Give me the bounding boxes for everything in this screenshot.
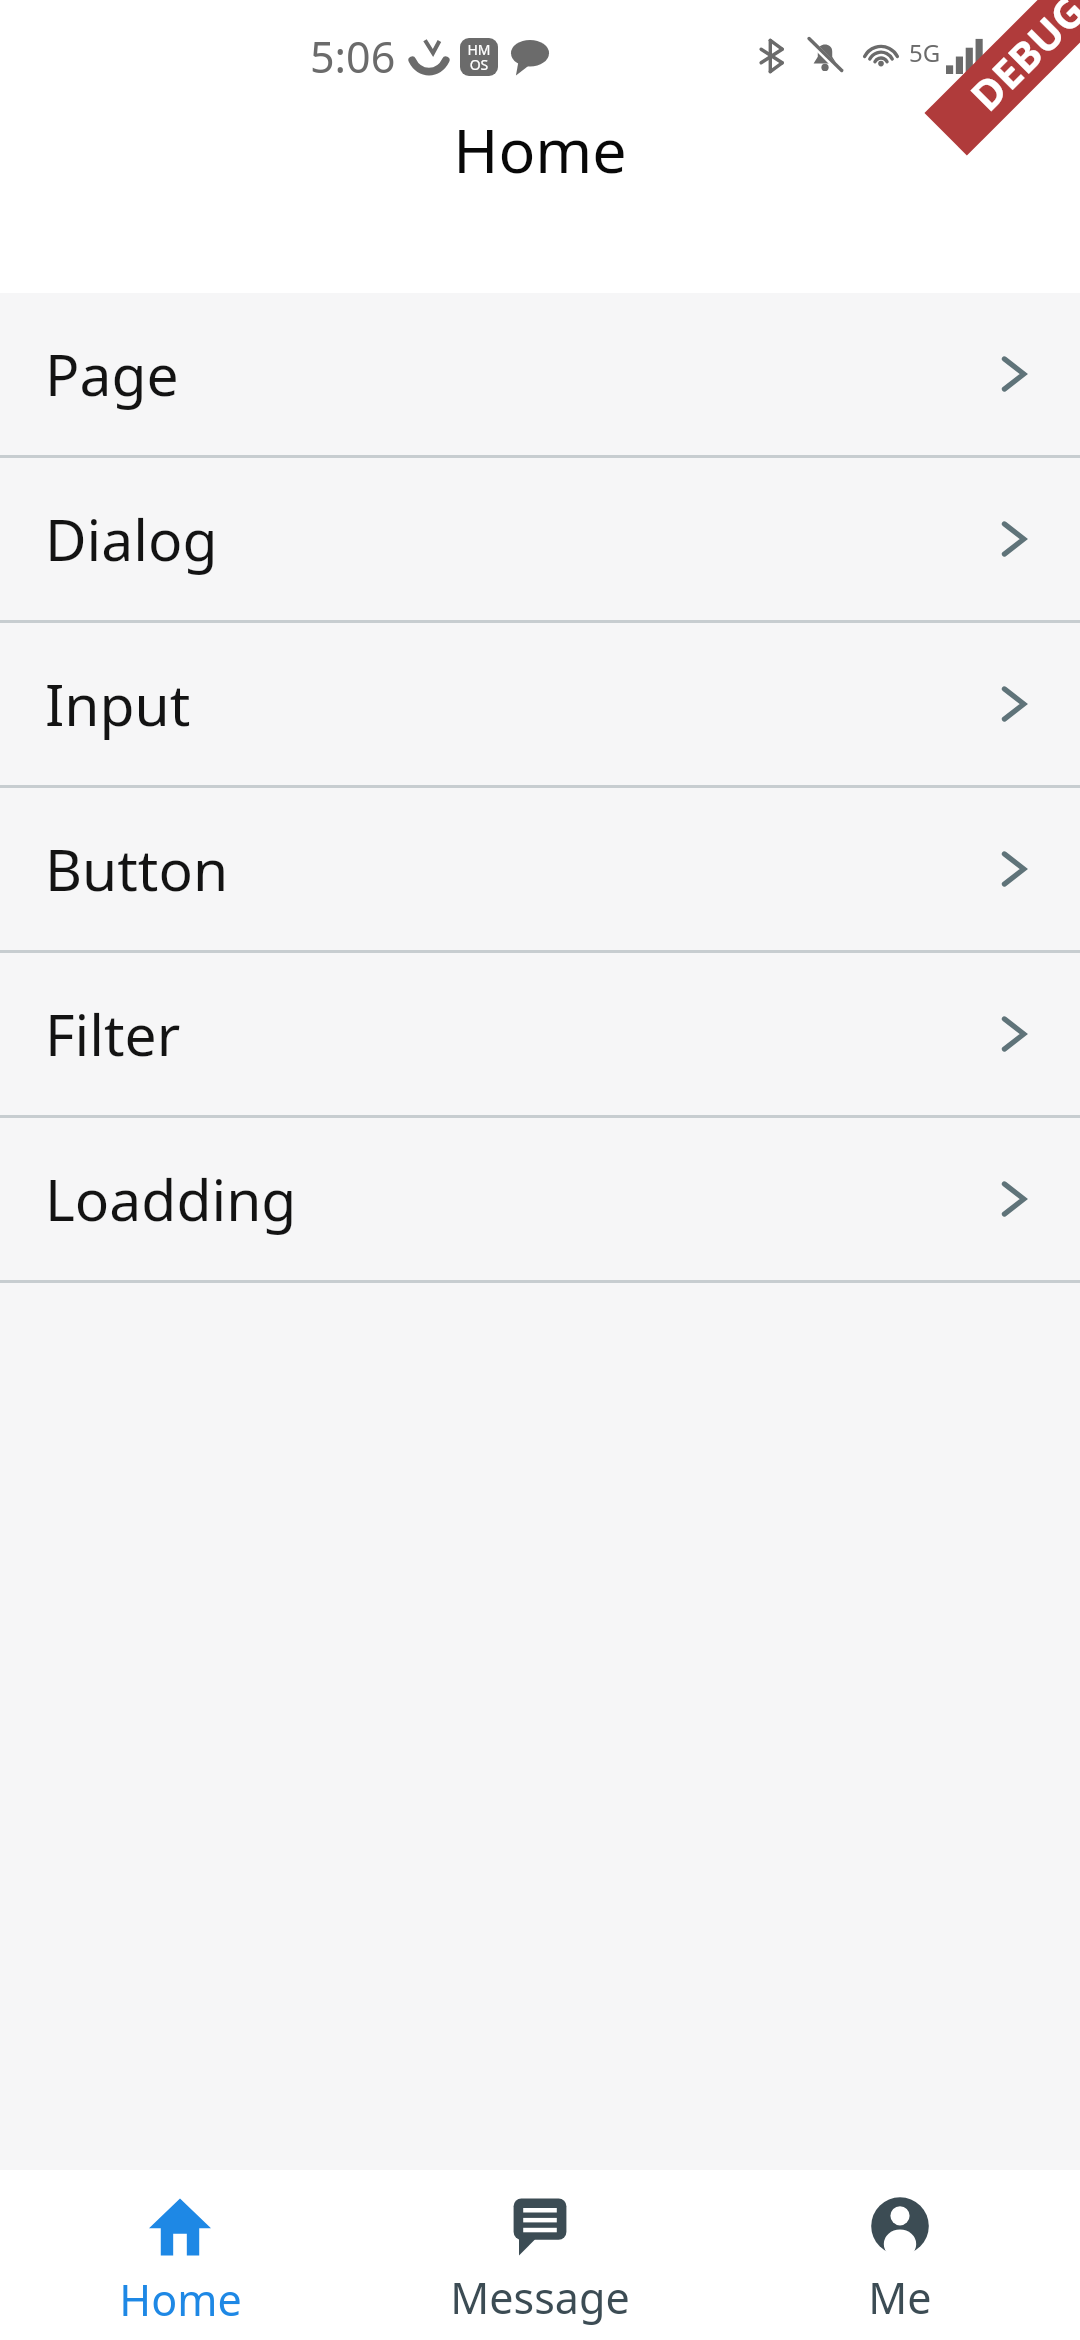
other: Message [510, 2196, 570, 2256]
staticText: Input [45, 665, 191, 743]
button[interactable]: Button [0, 788, 1080, 950]
staticText: Message [450, 2268, 630, 2327]
button[interactable]: Dialog [0, 458, 1080, 620]
staticText: Me [868, 2268, 932, 2327]
button[interactable]: Page [0, 293, 1080, 455]
staticText: Filter [45, 995, 181, 1073]
staticText: Loadding [45, 1160, 297, 1238]
button[interactable]: Filter [0, 953, 1080, 1115]
staticText: Home [0, 108, 1080, 191]
staticText: DEBUG [958, 0, 1080, 122]
staticText: Button [45, 830, 229, 908]
staticText: Page [45, 335, 179, 413]
other: Home [149, 2196, 211, 2258]
button[interactable]: Home [0, 2170, 360, 2340]
staticText: 5:06 [310, 27, 396, 86]
staticText: HM OS [467, 40, 491, 74]
button[interactable]: Message [360, 2170, 720, 2340]
button[interactable]: Me [720, 2170, 1080, 2340]
staticText: Dialog [45, 500, 218, 578]
button[interactable]: Input [0, 623, 1080, 785]
staticText: 5G [909, 36, 941, 69]
other: Me [870, 2196, 930, 2256]
staticText: Home [119, 2270, 242, 2329]
button[interactable]: Loadding [0, 1118, 1080, 1280]
